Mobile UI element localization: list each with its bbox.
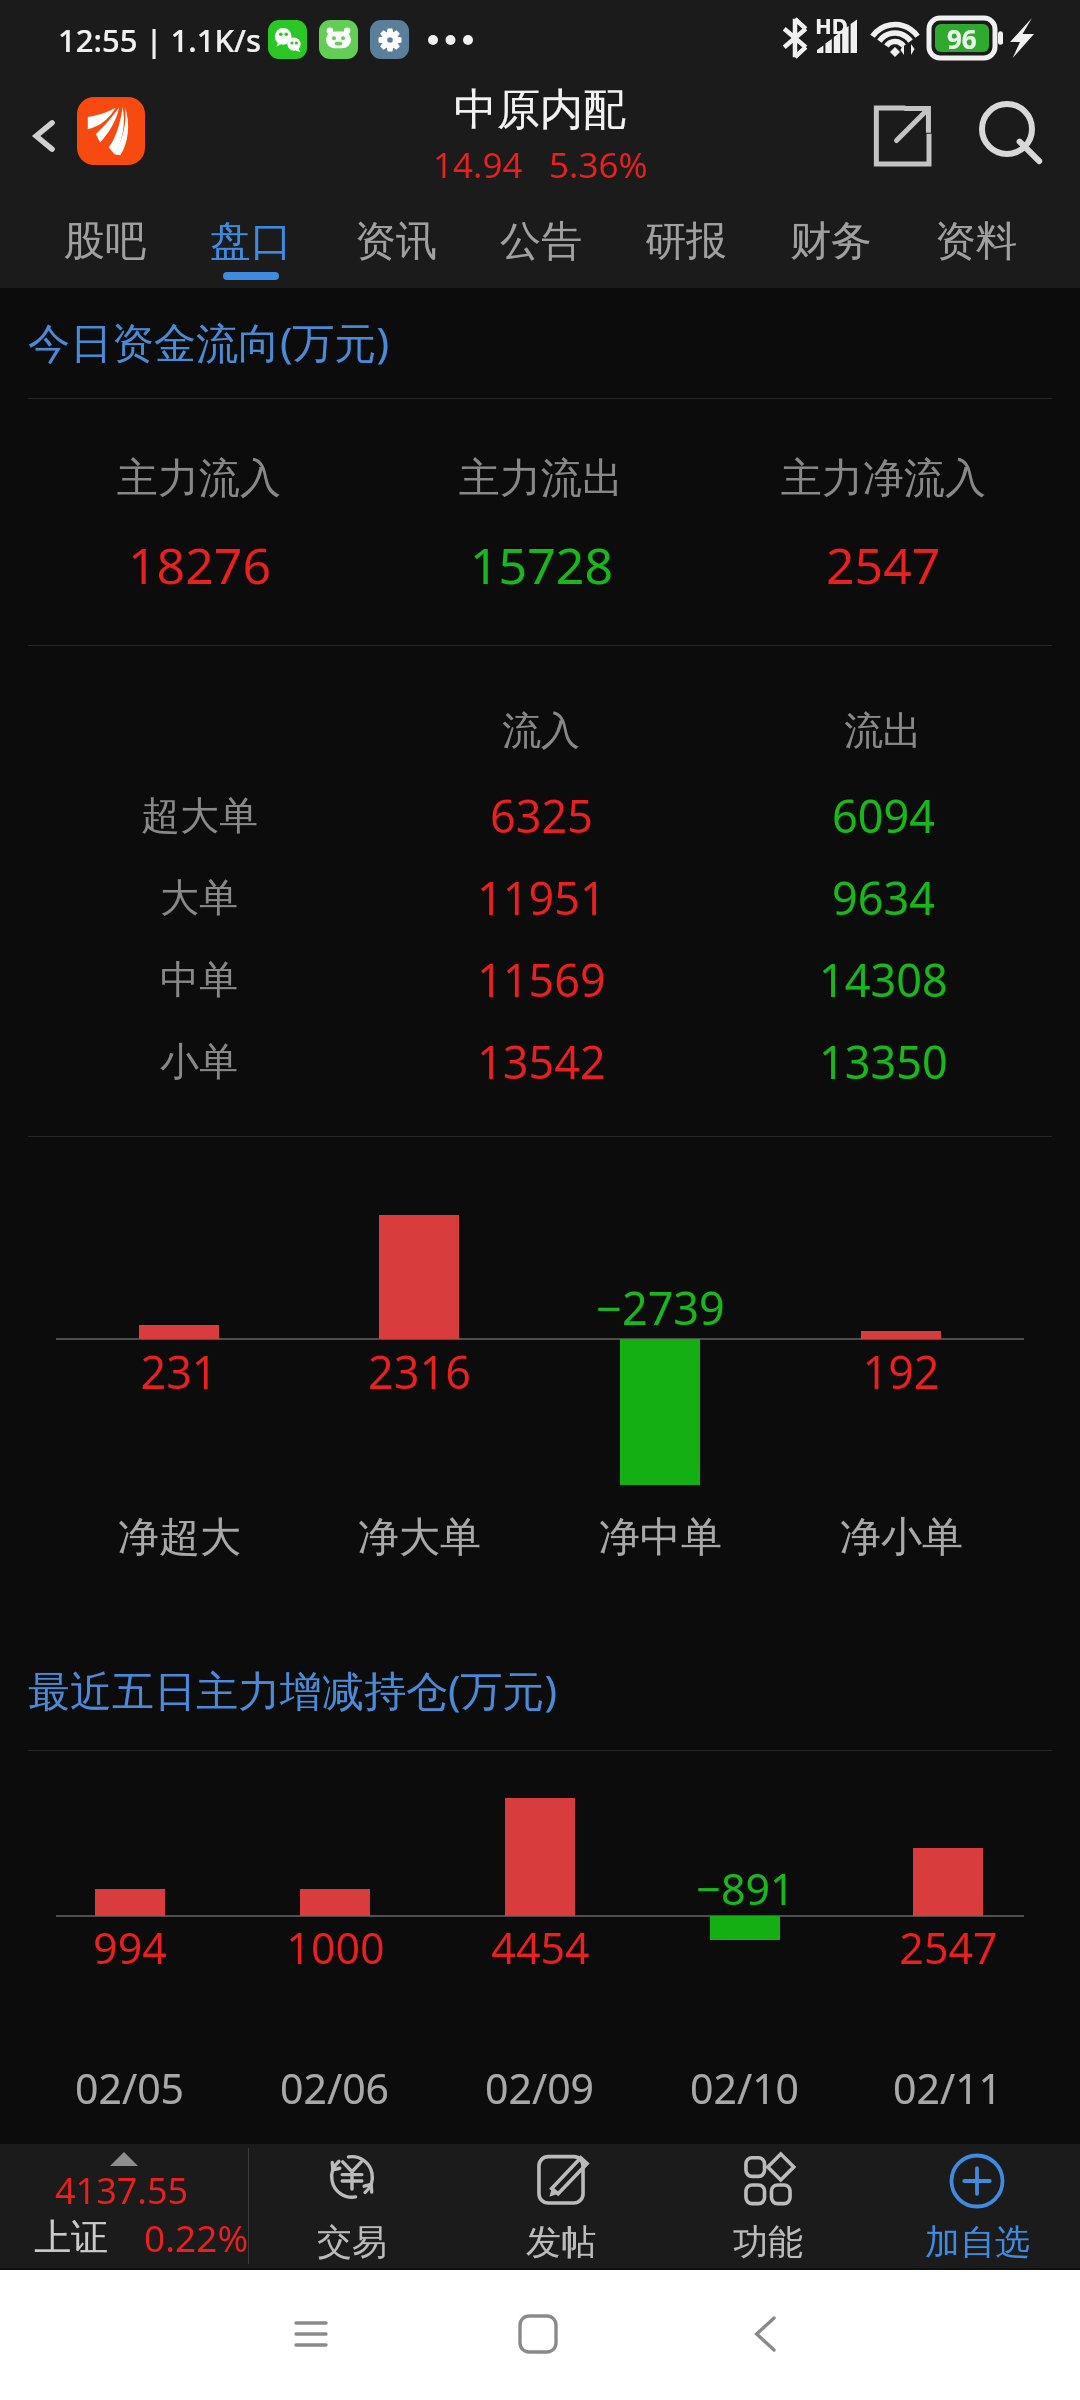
staticText: 主力净流入: [781, 453, 986, 505]
staticText: 0.22%: [144, 2212, 249, 2262]
staticText: 96: [947, 21, 977, 56]
staticText: 财务: [790, 216, 872, 268]
staticText: 2547: [826, 531, 941, 599]
staticText: 净小单: [840, 1512, 963, 1564]
staticText: 中原内配: [454, 83, 626, 137]
staticText: 今日资金流向(万元): [28, 313, 390, 370]
button[interactable]: Home: [438, 2268, 638, 2400]
button[interactable]: 资料: [903, 192, 1048, 288]
button[interactable]: Back: [665, 2268, 865, 2400]
button[interactable]: 财务: [758, 192, 903, 288]
staticText: 主力流入: [117, 453, 281, 505]
staticText: 净大单: [358, 1512, 481, 1564]
button[interactable]: Back: [8, 80, 82, 192]
staticText: −2739: [596, 1277, 725, 1338]
staticText: 18276: [128, 531, 271, 599]
staticText: 流入: [502, 706, 580, 755]
button[interactable]: 公告: [468, 192, 613, 288]
staticText: 研报: [645, 216, 727, 268]
button[interactable]: 4137.55: [0, 2144, 248, 2268]
button[interactable]: 资讯: [323, 192, 468, 288]
staticText: 主力流出: [459, 453, 623, 505]
staticText: 9634: [832, 867, 935, 928]
button[interactable]: 交易: [248, 2144, 456, 2268]
button[interactable]: Search: [958, 80, 1070, 192]
staticText: 最近五日主力增减持仓(万元): [28, 1661, 558, 1718]
staticText: 11951: [477, 867, 606, 928]
button[interactable]: 股吧: [32, 192, 178, 288]
button[interactable]: 功能: [664, 2144, 872, 2268]
staticText: −891: [696, 1859, 795, 1918]
staticText: 02/10: [690, 2060, 800, 2116]
staticText: 大单: [160, 873, 238, 922]
staticText: 6325: [490, 785, 593, 846]
staticText: 2547: [899, 1918, 998, 1977]
staticText: 加自选: [925, 2220, 1030, 2264]
staticText: 02/09: [485, 2060, 595, 2116]
staticText: 13542: [477, 1031, 606, 1092]
button[interactable]: Share: [857, 80, 945, 192]
staticText: 资料: [935, 216, 1017, 268]
staticText: 功能: [733, 2220, 803, 2264]
staticText: 12:55 | 1.1K/s: [58, 19, 262, 61]
staticText: 中单: [160, 955, 238, 1004]
staticText: 净中单: [599, 1512, 722, 1564]
staticText: 4137.55: [55, 2166, 189, 2212]
button[interactable]: Eastmoney logo: [77, 97, 145, 165]
button[interactable]: 加自选: [873, 2144, 1080, 2268]
button[interactable]: 发帖: [457, 2144, 665, 2268]
staticText: 盘口: [210, 216, 292, 268]
staticText: 资讯: [355, 216, 437, 268]
staticText: 股吧: [64, 216, 146, 268]
staticText: 1000: [286, 1918, 385, 1977]
staticText: 11569: [477, 949, 606, 1010]
staticText: 994: [93, 1918, 167, 1977]
staticText: 交易: [317, 2220, 387, 2264]
staticText: 15728: [470, 531, 613, 599]
staticText: 4454: [491, 1918, 590, 1977]
staticText: 02/06: [280, 2060, 390, 2116]
staticText: 上证: [34, 2214, 108, 2261]
button[interactable]: 研报: [613, 192, 758, 288]
staticText: 192: [862, 1341, 940, 1402]
staticText: 13350: [819, 1031, 948, 1092]
staticText: HD: [815, 10, 848, 40]
staticText: 流出: [844, 706, 922, 755]
staticText: 小单: [160, 1037, 238, 1086]
staticText: 5.36%: [549, 141, 648, 189]
staticText: 净超大: [118, 1512, 241, 1564]
staticText: 231: [140, 1341, 218, 1402]
staticText: 14.94: [433, 141, 523, 189]
button[interactable]: Recent apps: [211, 2268, 411, 2400]
staticText: 14308: [819, 949, 948, 1010]
staticText: 公告: [500, 216, 582, 268]
staticText: 2316: [368, 1341, 471, 1402]
staticText: 超大单: [141, 791, 258, 840]
staticText: 02/05: [75, 2060, 185, 2116]
staticText: 02/11: [893, 2060, 1003, 2116]
button[interactable]: 盘口: [178, 192, 323, 288]
staticText: 发帖: [526, 2220, 596, 2264]
staticText: 6094: [832, 785, 935, 846]
